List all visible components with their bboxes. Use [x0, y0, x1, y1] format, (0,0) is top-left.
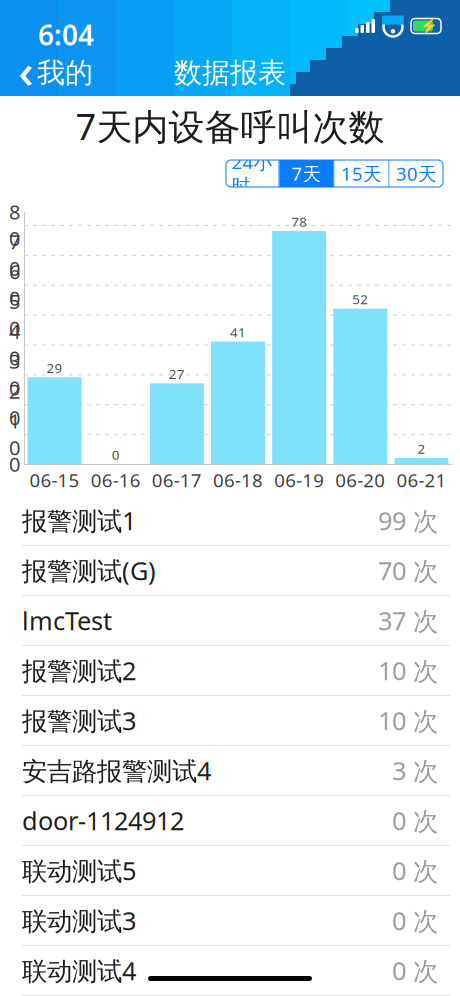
button[interactable]: 报警测试3 [0, 696, 460, 746]
button[interactable]: 15天 [334, 160, 388, 187]
button[interactable]: 报警测试(G) [0, 546, 460, 596]
staticText: 27 [169, 365, 185, 383]
staticText: 报警测试2 [22, 654, 136, 687]
button[interactable]: 联动测试3 [0, 896, 460, 946]
staticText: 78 [291, 213, 307, 230]
staticText: 0 次 [392, 904, 438, 937]
staticText: 3 次 [392, 754, 438, 787]
staticText: ‹ [18, 38, 34, 102]
staticText: 0 [112, 446, 120, 463]
staticText: 报警测试(G) [22, 554, 156, 587]
staticText: 我的 [37, 56, 93, 90]
staticText: 99 次 [378, 504, 438, 537]
staticText: 报警测试1 [22, 504, 136, 537]
staticText: 7天 [291, 161, 321, 186]
staticText: 联动测试4 [22, 954, 136, 987]
staticText: 80 [9, 198, 20, 251]
button[interactable]: 报警测试1 [0, 496, 460, 546]
staticText: 29 [47, 359, 63, 377]
button[interactable]: 联动测试5 [0, 846, 460, 896]
staticText: 24小时 [231, 150, 272, 197]
staticText: 10 次 [378, 654, 438, 687]
staticText: 7天内设备呼叫次数 [75, 102, 384, 150]
staticText: 10 次 [378, 704, 438, 737]
staticText: ⚡ [420, 18, 438, 34]
button[interactable]: ‹ [6, 51, 105, 95]
staticText: 06-18 [213, 468, 263, 492]
button[interactable]: 7天 [279, 160, 333, 187]
staticText: 40 [9, 318, 20, 371]
staticText: 联动测试3 [22, 904, 136, 937]
button[interactable]: 联动测试4 [0, 946, 460, 996]
staticText: 41 [230, 323, 246, 341]
staticText: 60 [9, 258, 20, 311]
staticText: 数据报表 [174, 56, 286, 90]
staticText: 50 [9, 288, 20, 341]
staticText: 06-17 [152, 468, 202, 492]
staticText: 20 [9, 378, 20, 431]
staticText: 0 次 [392, 854, 438, 887]
staticText: 30天 [396, 161, 437, 186]
staticText: 0 次 [392, 804, 438, 837]
staticText: 0 次 [392, 954, 438, 987]
staticText: 70 次 [378, 554, 438, 587]
staticText: 0 [9, 451, 20, 477]
staticText: 52 [352, 290, 368, 308]
staticText: lmcTest [22, 604, 112, 637]
button[interactable]: lmcTest [0, 596, 460, 646]
staticText: 30 [9, 348, 20, 401]
staticText: 10 [9, 408, 20, 461]
staticText: 报警测试3 [22, 704, 136, 737]
staticText: 06-21 [396, 468, 446, 492]
staticText: 06-15 [30, 468, 80, 492]
button[interactable]: 报警测试2 [0, 646, 460, 696]
staticText: door-1124912 [22, 804, 184, 837]
staticText: 06-16 [91, 468, 141, 492]
staticText: 37 次 [378, 604, 438, 637]
button[interactable]: 24小时 [225, 160, 278, 187]
staticText: 70 [9, 228, 20, 281]
staticText: 06-19 [274, 468, 324, 492]
staticText: 联动测试5 [22, 854, 136, 887]
staticText: 15天 [341, 161, 382, 186]
button[interactable]: door-1124912 [0, 796, 460, 846]
staticText: 6:04 [38, 16, 94, 53]
button[interactable]: 安吉路报警测试4 [0, 746, 460, 796]
staticText: 06-20 [335, 468, 385, 492]
staticText: 2 [417, 440, 425, 457]
staticText: 安吉路报警测试4 [22, 754, 211, 787]
button[interactable]: 30天 [389, 160, 443, 187]
